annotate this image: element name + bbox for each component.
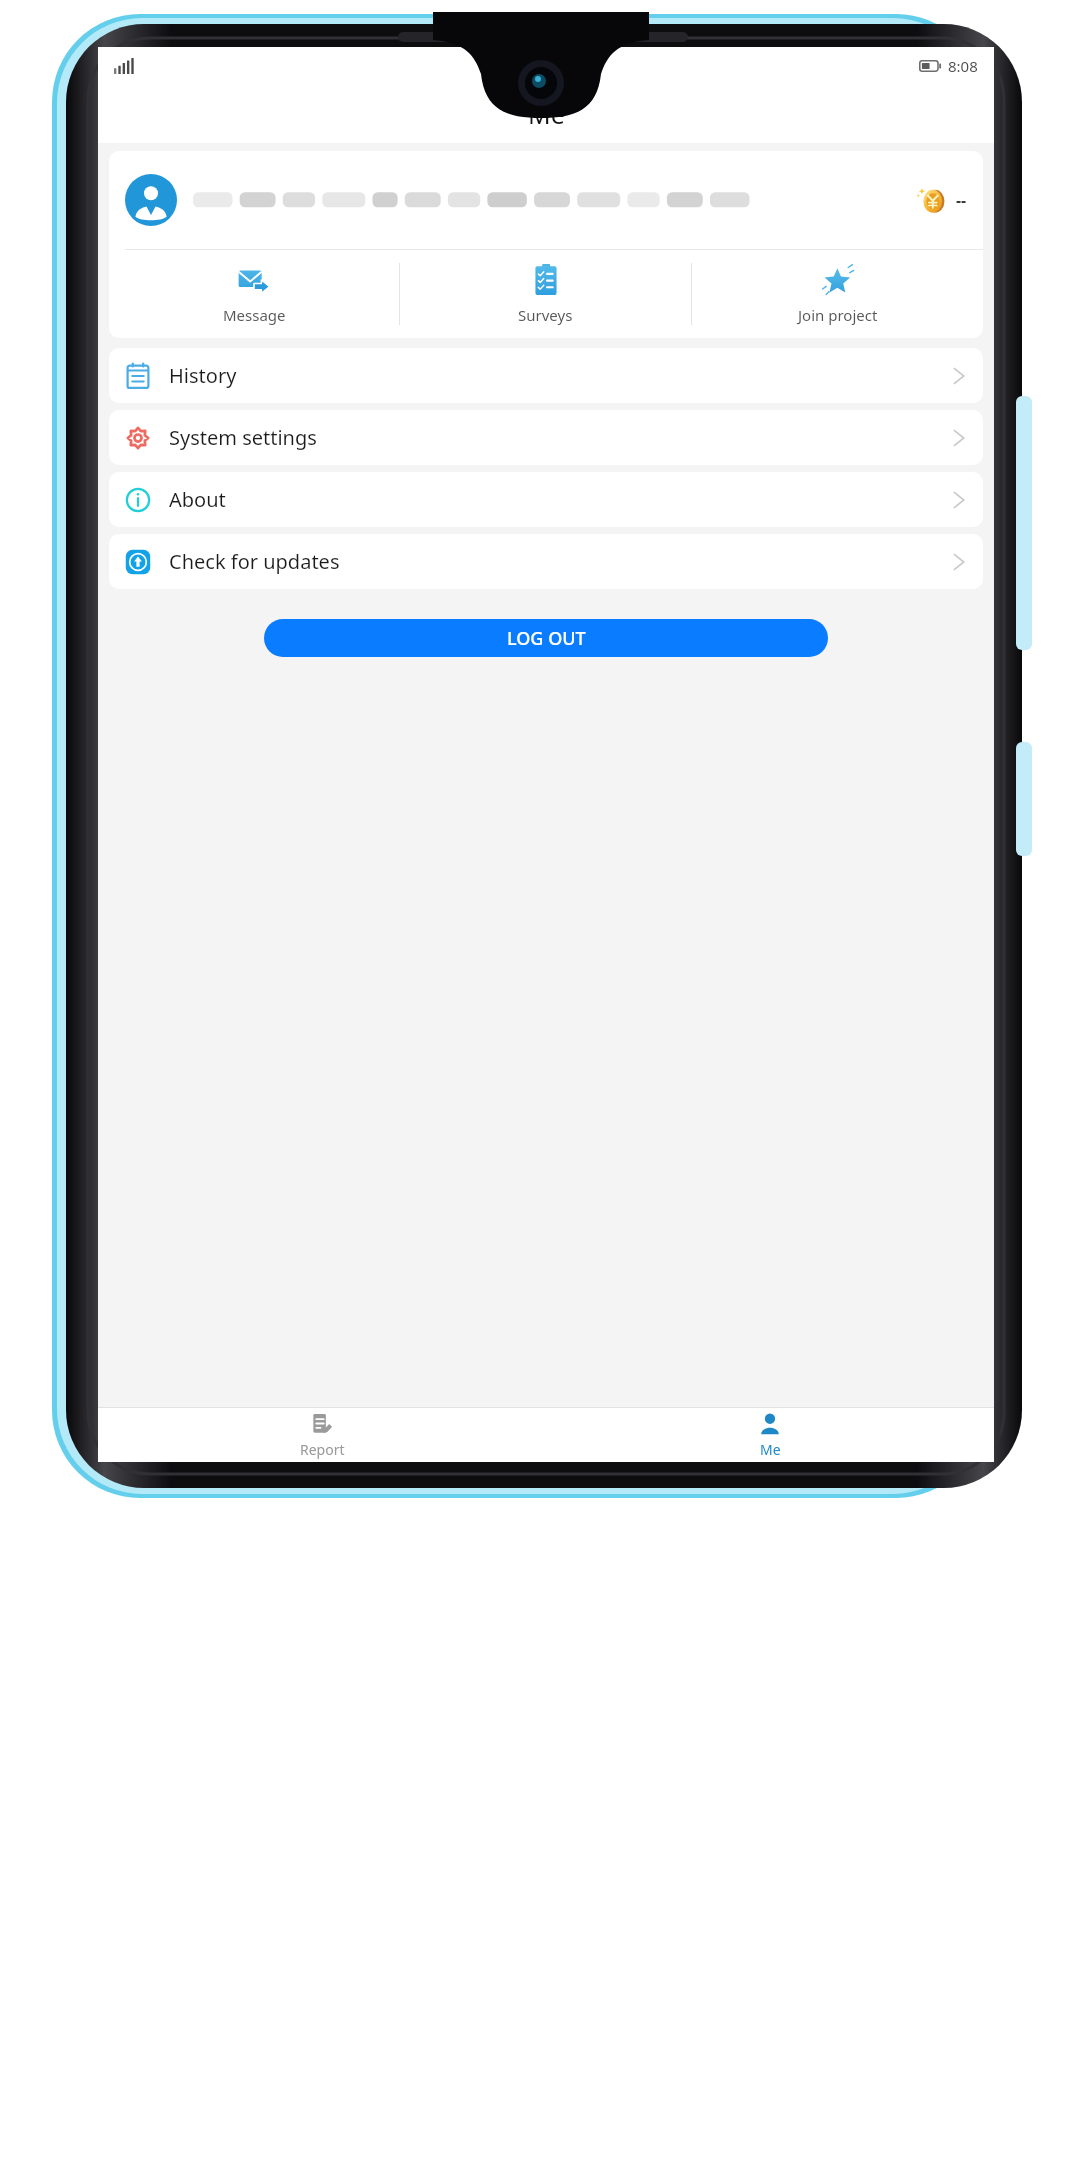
button[interactable]: About	[109, 472, 983, 527]
button[interactable]: Me	[546, 1408, 994, 1462]
staticText: Surveys	[518, 305, 573, 325]
staticText: --	[956, 189, 967, 211]
other: Me	[758, 1412, 782, 1436]
staticText: History	[169, 362, 237, 389]
other: Report	[310, 1412, 334, 1436]
button[interactable]: LOG OUT	[264, 619, 828, 657]
button[interactable]: System settings	[109, 410, 983, 465]
staticText: Report	[300, 1440, 345, 1459]
staticText: LOG OUT	[507, 626, 586, 651]
staticText: Me	[760, 1440, 781, 1459]
staticText: System settings	[169, 424, 317, 451]
staticText: 8:08	[948, 56, 978, 76]
staticText: About	[169, 486, 226, 513]
button[interactable]: History	[109, 348, 983, 403]
button[interactable]: Check for updates	[109, 534, 983, 589]
button[interactable]: Join project	[692, 250, 983, 338]
button[interactable]: --	[109, 151, 983, 249]
staticText: Message	[223, 305, 286, 325]
button[interactable]: Message	[109, 250, 399, 338]
staticText: Check for updates	[169, 548, 340, 575]
staticText: Me	[528, 97, 565, 131]
button[interactable]: Surveys	[400, 250, 691, 338]
button[interactable]: Report	[98, 1408, 546, 1462]
staticText: Join project	[798, 305, 878, 325]
